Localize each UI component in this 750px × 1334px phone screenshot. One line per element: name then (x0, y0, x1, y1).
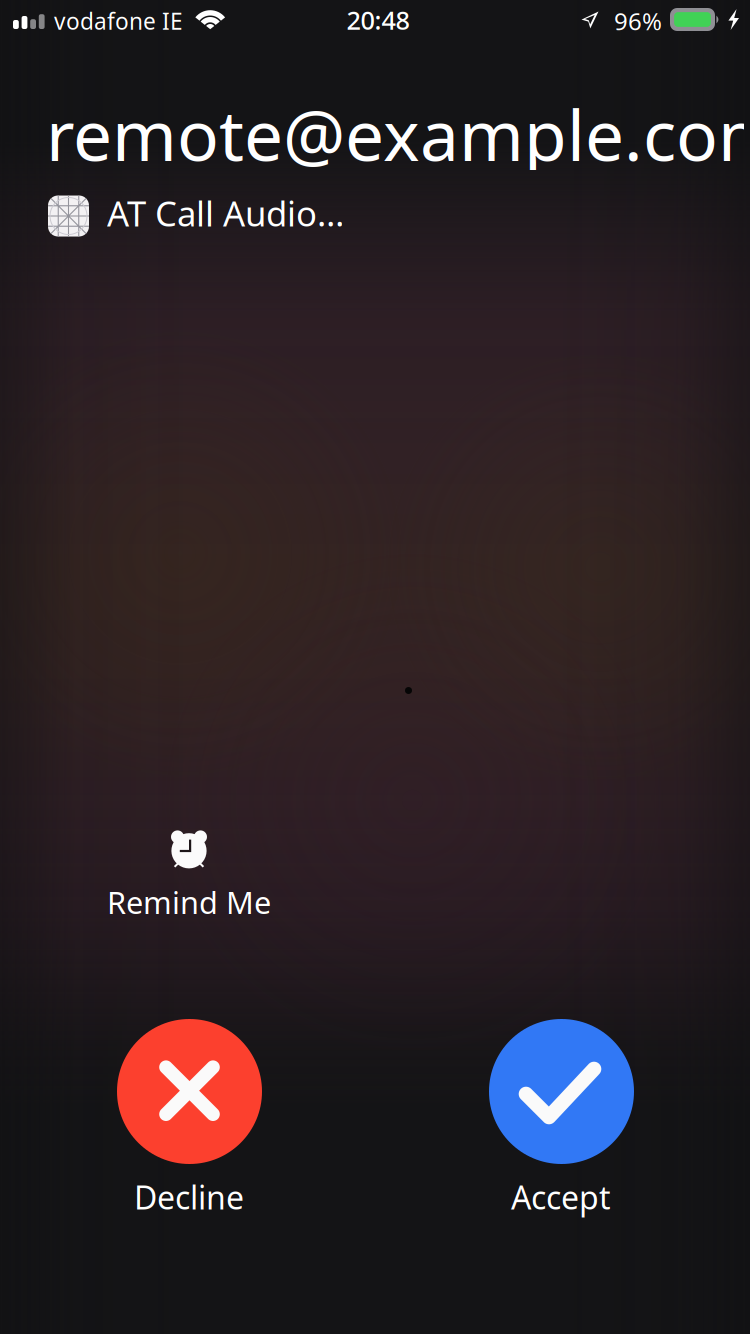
staticText: Remind Me (107, 882, 271, 922)
staticText: remote@example.com (46, 88, 750, 180)
staticText: 20:48 (346, 3, 409, 37)
staticText: vodafone IE (54, 6, 183, 36)
staticText: AT Call Audio… (107, 190, 344, 236)
staticText: Accept (511, 1176, 611, 1218)
button[interactable]: AT Call Audio… (48, 194, 344, 238)
button[interactable]: Remind Me (90, 830, 288, 928)
button[interactable]: Accept (453, 1019, 669, 1225)
staticText: Decline (134, 1176, 244, 1218)
button[interactable]: Decline (81, 1019, 297, 1225)
staticText: 96% (614, 5, 662, 37)
